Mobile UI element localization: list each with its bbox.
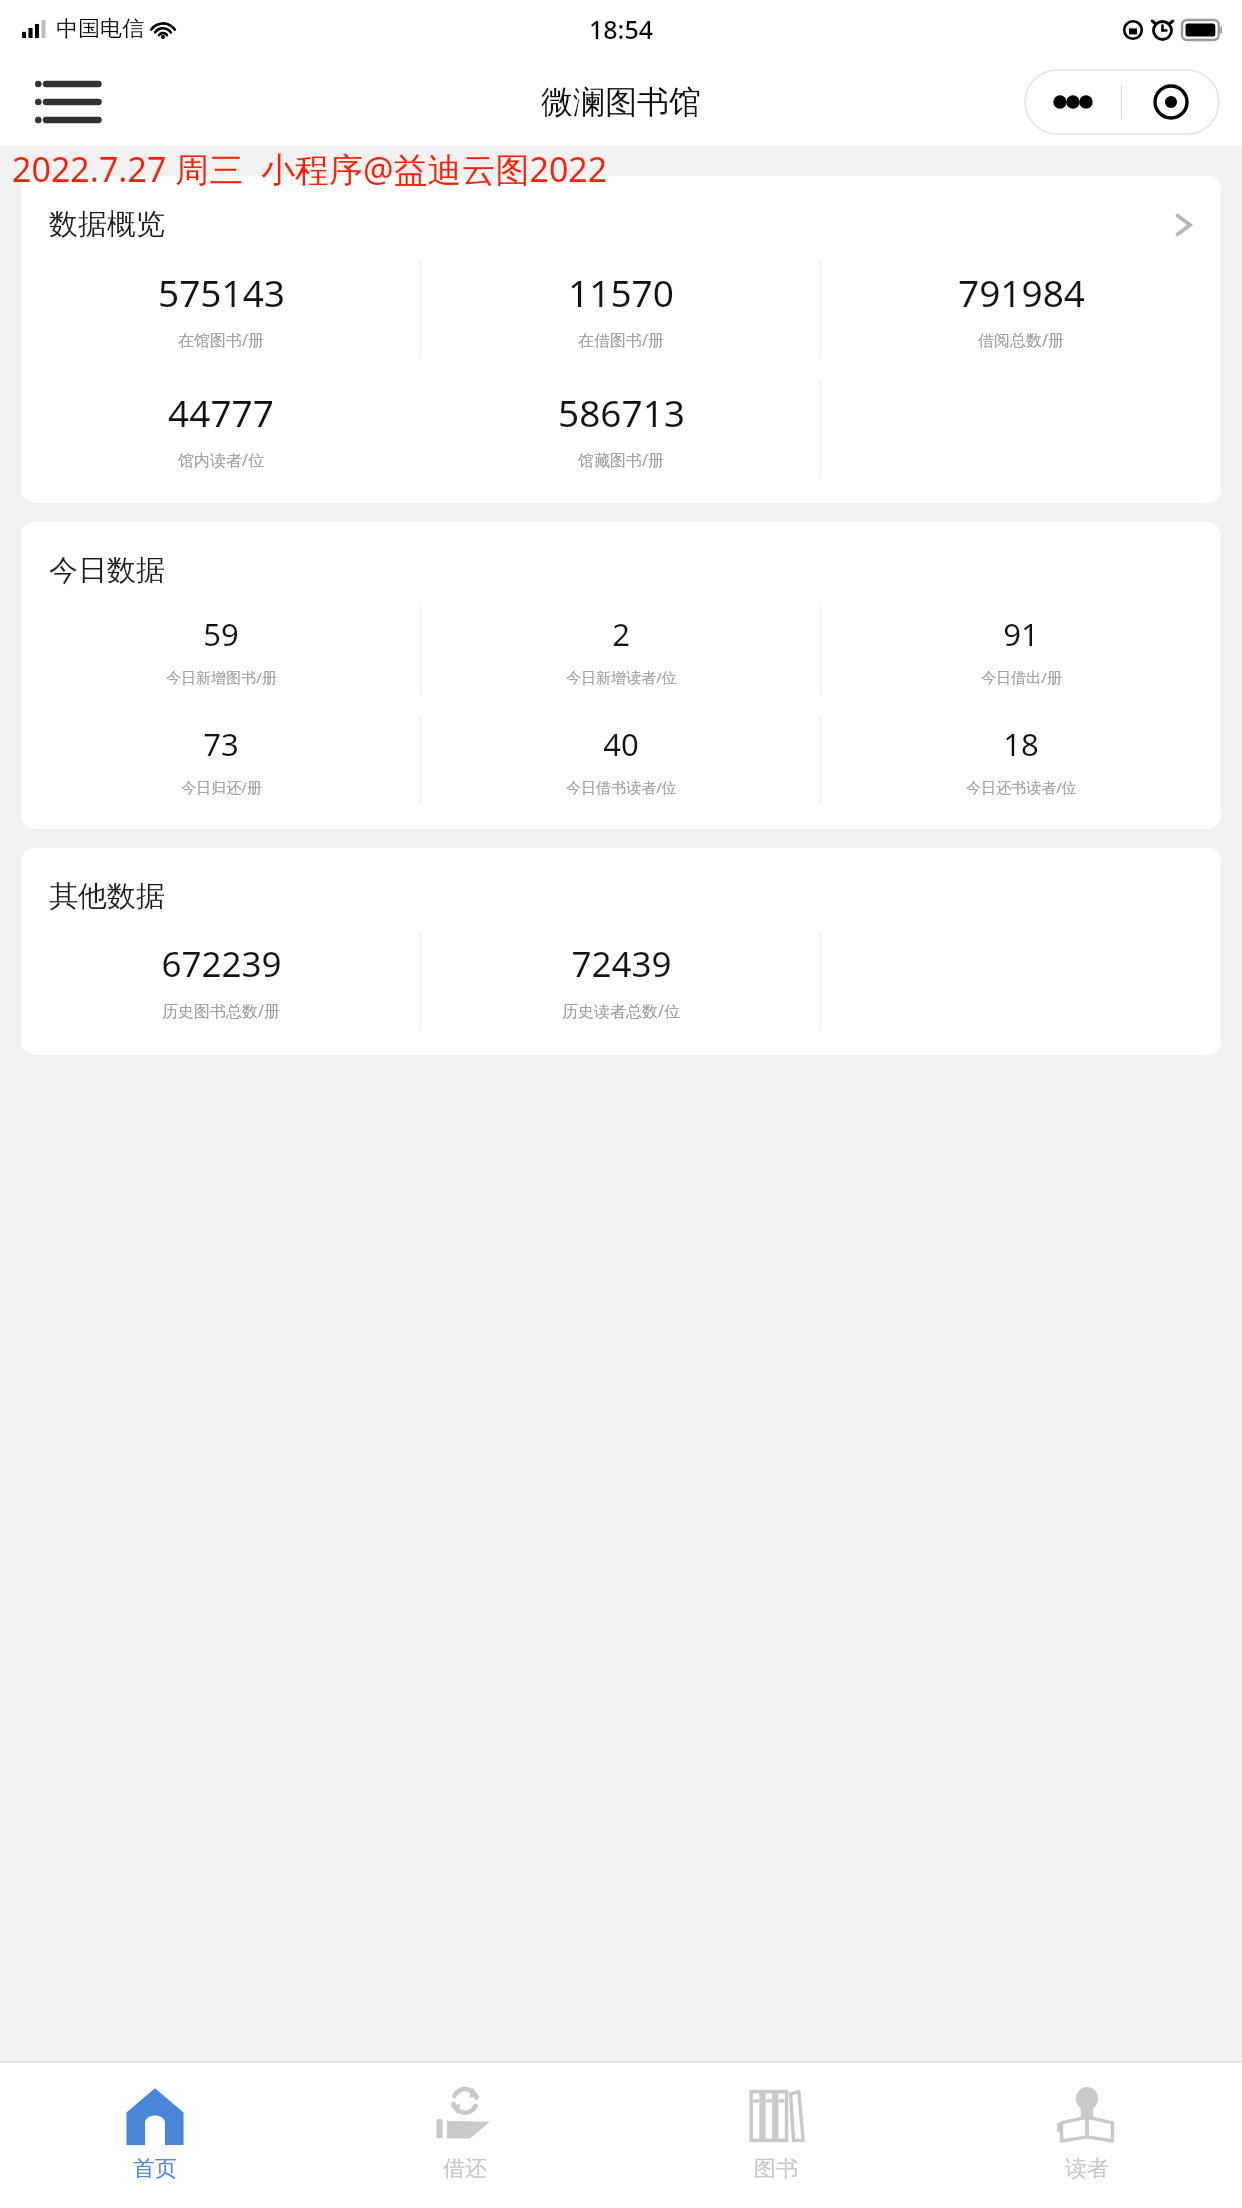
- button[interactable]: More: [1024, 69, 1121, 135]
- staticText: 586713: [558, 387, 685, 437]
- staticText: 59: [203, 613, 239, 655]
- button[interactable]: 其他数据: [21, 848, 1221, 1055]
- button[interactable]: 读者: [931, 2063, 1242, 2208]
- button[interactable]: Menu: [34, 72, 102, 132]
- staticText: 借还: [443, 2155, 487, 2183]
- staticText: 其他数据: [49, 878, 165, 915]
- staticText: 在馆图书/册: [178, 329, 264, 351]
- staticText: 11570: [568, 267, 674, 317]
- staticText: 44777: [168, 387, 274, 437]
- staticText: 575143: [158, 267, 285, 317]
- staticText: 今日借书读者/位: [566, 777, 677, 797]
- staticText: 18:54: [589, 12, 654, 46]
- staticText: 791984: [958, 267, 1085, 317]
- staticText: 首页: [133, 2155, 177, 2183]
- staticText: 图书: [754, 2155, 798, 2183]
- button[interactable]: 图书: [620, 2063, 931, 2208]
- staticText: 中国电信: [56, 15, 144, 43]
- button[interactable]: 今日数据: [21, 522, 1221, 829]
- staticText: 2022.7.27 周三 小程序@益迪云图2022: [12, 146, 608, 192]
- staticText: 今日还书读者/位: [966, 777, 1077, 797]
- staticText: 在借图书/册: [578, 329, 664, 351]
- button[interactable]: Close: [1122, 69, 1220, 135]
- button[interactable]: 数据概览: [21, 176, 1221, 503]
- staticText: 672239: [161, 940, 282, 988]
- staticText: 40: [603, 723, 639, 765]
- staticText: 历史图书总数/册: [162, 1000, 280, 1022]
- staticText: 18: [1003, 723, 1039, 765]
- staticText: 微澜图书馆: [541, 82, 701, 122]
- staticText: 读者: [1065, 2155, 1109, 2183]
- staticText: 今日借出/册: [981, 667, 1062, 687]
- staticText: 馆内读者/位: [178, 449, 264, 471]
- staticText: 今日数据: [49, 552, 165, 589]
- staticText: 数据概览: [49, 206, 165, 243]
- staticText: 今日新增图书/册: [166, 667, 277, 687]
- button[interactable]: 首页: [0, 2063, 310, 2208]
- staticText: 91: [1003, 613, 1039, 655]
- staticText: 今日新增读者/位: [566, 667, 677, 687]
- staticText: 2: [612, 613, 630, 655]
- button[interactable]: 借还: [310, 2063, 620, 2208]
- staticText: 73: [203, 723, 239, 765]
- staticText: 72439: [571, 940, 672, 988]
- staticText: 历史读者总数/位: [562, 1000, 680, 1022]
- staticText: 今日归还/册: [181, 777, 262, 797]
- staticText: 借阅总数/册: [978, 329, 1064, 351]
- staticText: 馆藏图书/册: [578, 449, 664, 471]
